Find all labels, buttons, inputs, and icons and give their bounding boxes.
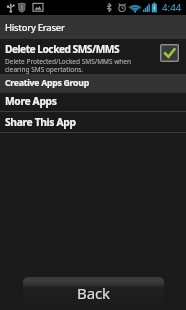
staticText: Delete Locked SMS/MMS: [5, 42, 120, 56]
staticText: History Eraser: [5, 21, 65, 34]
button[interactable]: Share This App: [0, 112, 186, 132]
button[interactable]: Back: [23, 277, 164, 305]
button[interactable]: Delete Locked SMS/MMS toggle: [160, 44, 179, 62]
staticText: More Apps: [5, 94, 57, 108]
button[interactable]: Creative Apps Group: [0, 74, 186, 93]
button[interactable]: More Apps: [0, 93, 186, 111]
staticText: Delete Protected/Locked SMS/MMS when cle…: [5, 57, 156, 74]
button[interactable]: Delete Locked SMS/MMS: [0, 39, 186, 74]
staticText: Back: [77, 283, 110, 303]
staticText: 4:44: [162, 1, 182, 14]
staticText: Share This App: [5, 115, 76, 129]
staticText: Creative Apps Group: [5, 77, 89, 89]
